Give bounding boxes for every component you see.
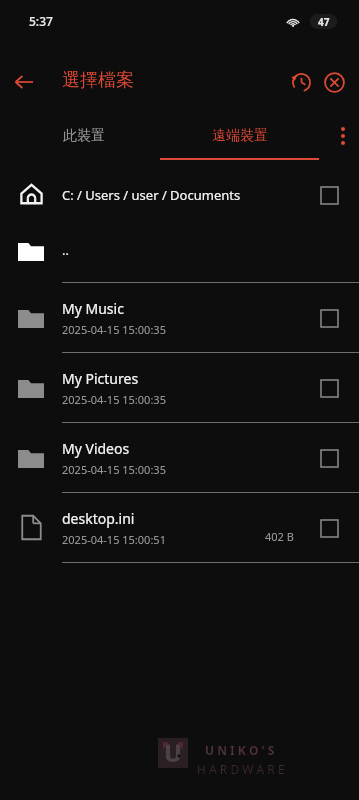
button[interactable]: History: [283, 64, 319, 100]
staticText: 2025-04-15 15:00:35: [62, 392, 166, 407]
button[interactable]: My Music: [0, 283, 359, 352]
button[interactable]: More options: [326, 117, 359, 155]
button[interactable]: Select item: [316, 445, 342, 471]
button[interactable]: Back: [6, 64, 42, 100]
staticText: 2025-04-15 15:00:35: [62, 322, 166, 337]
staticText: 402 B: [265, 529, 294, 544]
staticText: U N I K O ' S: [205, 742, 275, 758]
staticText: H A R D W A R E: [197, 761, 285, 777]
staticText: My Pictures: [62, 369, 139, 388]
staticText: C: / Users / user / Documents: [62, 186, 241, 204]
staticText: My Music: [62, 299, 124, 318]
button[interactable]: Select item: [316, 182, 342, 208]
staticText: 47: [318, 15, 330, 29]
button[interactable]: Select item: [316, 375, 342, 401]
button[interactable]: ..: [0, 218, 359, 282]
button[interactable]: Select item: [316, 305, 342, 331]
staticText: 5:37: [29, 13, 53, 29]
button[interactable]: Select item: [316, 515, 342, 541]
staticText: 遠端裝置: [212, 127, 268, 145]
staticText: 2025-04-15 15:00:35: [62, 462, 166, 477]
staticText: My Videos: [62, 439, 130, 458]
button[interactable]: desktop.ini: [0, 493, 359, 562]
button[interactable]: Close: [316, 64, 352, 100]
button[interactable]: My Pictures: [0, 353, 359, 422]
button[interactable]: My Videos: [0, 423, 359, 492]
staticText: 2025-04-15 15:00:51: [62, 532, 166, 547]
button[interactable]: C: / Users / user / Documents: [0, 171, 359, 218]
staticText: 此裝置: [63, 127, 105, 145]
staticText: desktop.ini: [62, 509, 135, 528]
button[interactable]: 此裝置: [20, 110, 147, 162]
staticText: 選擇檔案: [62, 69, 134, 92]
button[interactable]: 遠端裝置: [160, 110, 320, 162]
staticText: ..: [62, 241, 69, 259]
